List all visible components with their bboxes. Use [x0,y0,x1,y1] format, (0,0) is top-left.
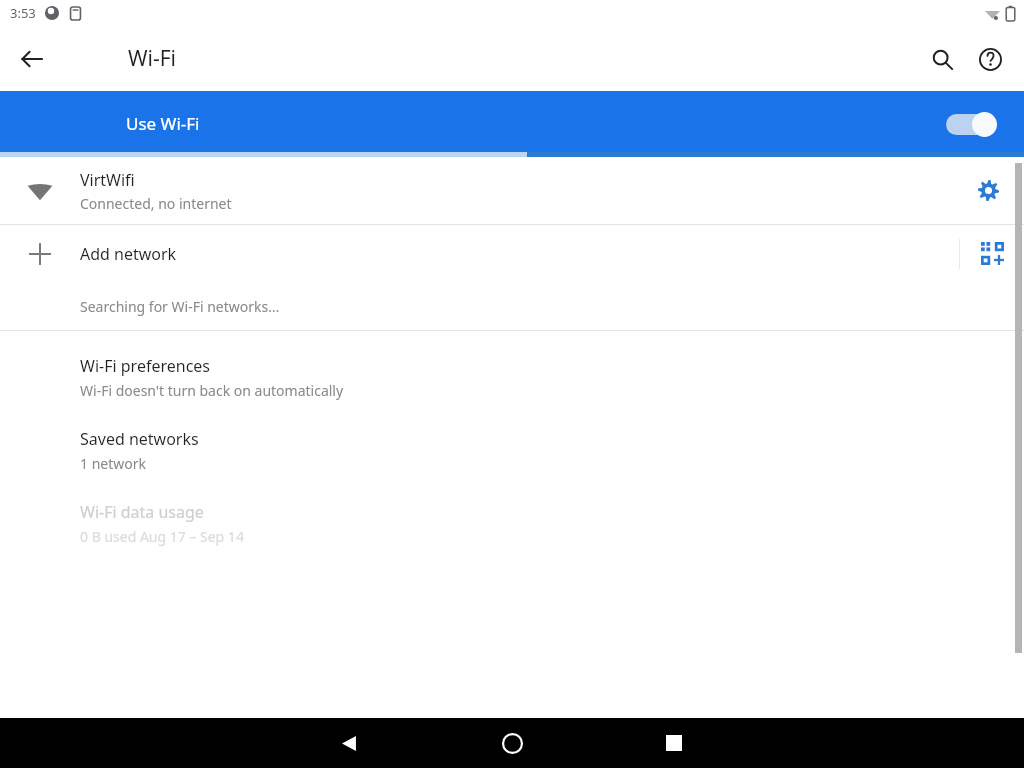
button[interactable]: Network settings [952,157,1024,224]
staticText: Wi-Fi preferences [80,355,211,377]
staticText: 1 network [80,454,146,473]
button[interactable]: Search [918,35,966,83]
button[interactable]: Home [488,719,536,767]
button[interactable]: Back [325,719,373,767]
button[interactable]: Help [966,35,1014,83]
staticText: Searching for Wi-Fi networks… [80,297,280,316]
staticText: 3:53 [10,4,36,22]
button[interactable]: Use Wi-Fi [0,91,1024,157]
staticText: Saved networks [80,428,199,450]
staticText: Connected, no internet [80,194,232,213]
staticText: 0 B used Aug 17 – Sep 14 [80,527,244,546]
button[interactable]: Recent apps [650,719,698,767]
button[interactable]: VirtWifi [0,157,1024,224]
button[interactable]: Add network [0,225,1024,282]
button[interactable]: Wi-Fi preferences [0,343,1024,416]
button[interactable]: Saved networks [0,416,1024,489]
button[interactable]: Back [8,35,56,83]
staticText: VirtWifi [80,169,135,191]
staticText: Use Wi-Fi [126,112,200,135]
staticText: Wi-Fi data usage [80,501,204,523]
staticText: Wi-Fi doesn't turn back on automatically [80,381,344,400]
staticText: Wi-Fi [128,44,177,73]
staticText: Add network [80,243,959,265]
button[interactable]: Scan QR code [960,225,1024,282]
button[interactable]: Wi-Fi data usage [0,489,1024,562]
